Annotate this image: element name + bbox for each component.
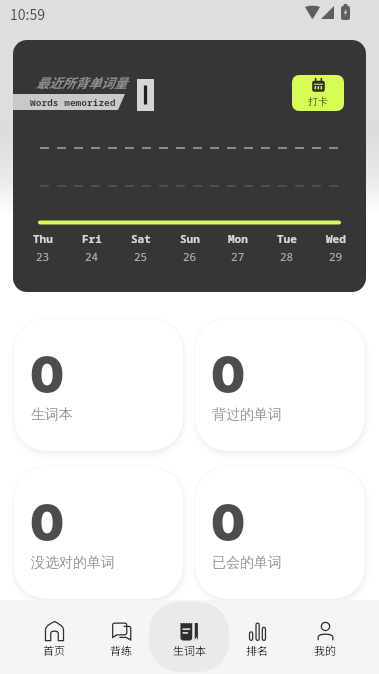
button[interactable]: 0 bbox=[195, 467, 365, 599]
button[interactable]: 我的 bbox=[285, 602, 365, 672]
staticText: 已会的单词 bbox=[212, 554, 282, 572]
staticText: 背过的单词 bbox=[212, 406, 282, 424]
button[interactable]: 0 bbox=[14, 467, 183, 599]
staticText: 0 bbox=[30, 345, 65, 403]
staticText: 生词本 bbox=[31, 406, 73, 424]
staticText: 0 bbox=[211, 345, 246, 403]
staticText: 我的 bbox=[314, 642, 336, 658]
staticText: 生词本 bbox=[173, 642, 206, 658]
button[interactable]: 0 bbox=[14, 319, 183, 451]
staticText: 27 bbox=[231, 249, 245, 264]
staticText: 最近所背单词量 bbox=[36, 73, 128, 92]
staticText: Wed bbox=[326, 231, 346, 246]
staticText: Tue bbox=[277, 231, 297, 246]
staticText: 排名 bbox=[246, 642, 268, 658]
staticText: 24 bbox=[85, 249, 99, 264]
staticText: 首页 bbox=[43, 642, 65, 658]
button[interactable]: 生词本 bbox=[149, 602, 229, 672]
button[interactable]: 打卡 bbox=[292, 75, 344, 111]
staticText: Sat bbox=[131, 231, 151, 246]
staticText: 23 bbox=[36, 249, 50, 264]
staticText: Sun bbox=[180, 231, 200, 246]
staticText: Mon bbox=[228, 231, 248, 246]
staticText: 29 bbox=[329, 249, 343, 264]
staticText: 0 bbox=[30, 493, 65, 551]
staticText: 25 bbox=[134, 249, 148, 264]
staticText: 26 bbox=[183, 249, 197, 264]
staticText: Fri bbox=[82, 231, 102, 246]
button[interactable]: 排名 bbox=[217, 602, 297, 672]
staticText: Thu bbox=[33, 231, 53, 246]
staticText: 没选对的单词 bbox=[31, 554, 115, 572]
button[interactable]: 背练 bbox=[81, 602, 161, 672]
button[interactable]: 0 bbox=[195, 319, 365, 451]
staticText: Words memorized bbox=[30, 96, 116, 109]
staticText: 28 bbox=[280, 249, 294, 264]
staticText: 10:59 bbox=[10, 4, 45, 24]
staticText: 打卡 bbox=[308, 95, 328, 108]
staticText: 0 bbox=[211, 493, 246, 551]
button[interactable]: 首页 bbox=[14, 602, 94, 672]
staticText: 背练 bbox=[110, 642, 132, 658]
